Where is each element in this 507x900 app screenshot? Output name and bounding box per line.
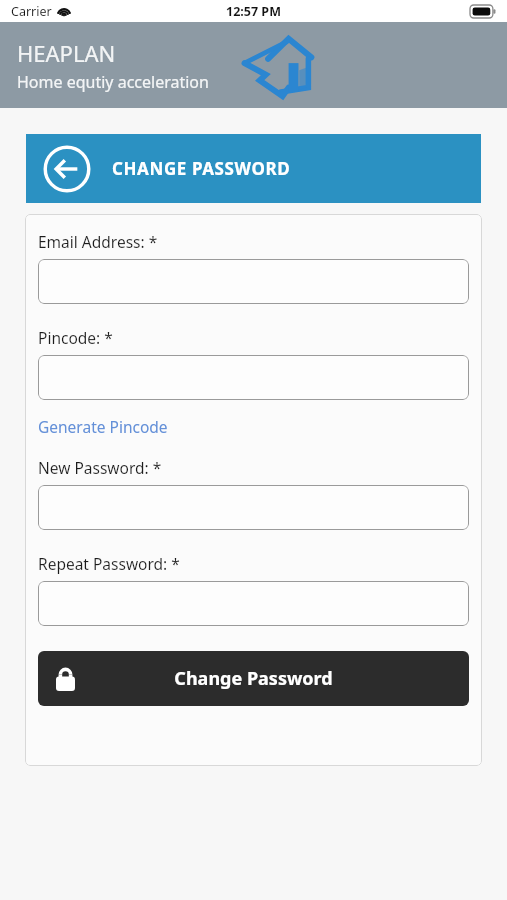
staticText: Repeat Password: * bbox=[38, 553, 180, 574]
staticText: New Password: * bbox=[38, 457, 162, 478]
button[interactable]: Generate Pincode bbox=[38, 415, 168, 438]
button[interactable] bbox=[38, 485, 469, 530]
staticText: Carrier bbox=[11, 3, 52, 20]
button[interactable]: Change Password bbox=[38, 651, 469, 706]
button[interactable] bbox=[38, 355, 469, 400]
staticText: Home equtiy acceleration bbox=[17, 71, 209, 93]
staticText: HEAPLAN bbox=[17, 38, 116, 68]
button[interactable] bbox=[38, 581, 469, 626]
staticText: 12:57 PM bbox=[226, 3, 281, 20]
staticText: Generate Pincode bbox=[38, 416, 168, 437]
button[interactable] bbox=[38, 259, 469, 304]
staticText: Change Password bbox=[38, 666, 469, 691]
staticText: Pincode: * bbox=[38, 327, 113, 348]
staticText: Email Address: * bbox=[38, 231, 158, 252]
button[interactable]: Back bbox=[42, 144, 92, 194]
staticText: CHANGE PASSWORD bbox=[112, 157, 291, 180]
